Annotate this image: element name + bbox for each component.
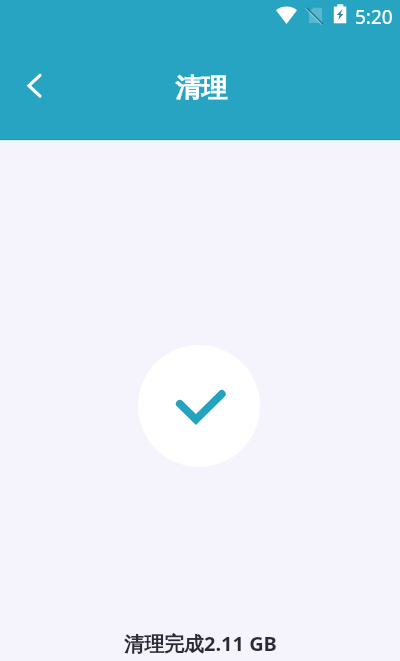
staticText: 5:20 <box>355 4 393 30</box>
staticText: 清理 <box>175 72 227 105</box>
staticText: 清理完成2.11 GB <box>124 630 277 657</box>
button[interactable]: Back <box>10 62 58 110</box>
